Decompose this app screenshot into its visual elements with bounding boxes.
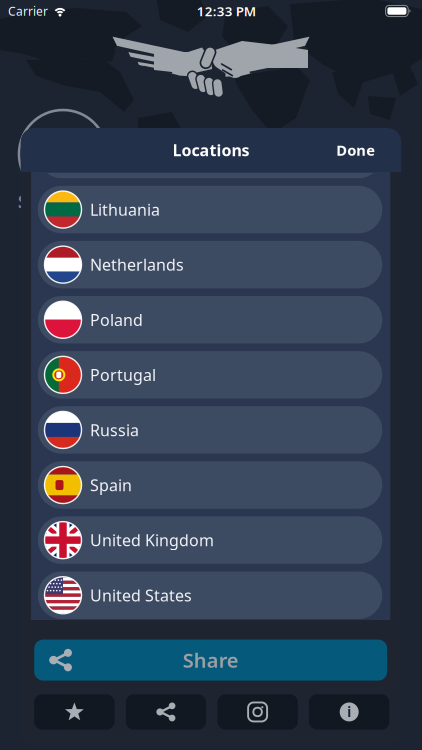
- button[interactable]: Share: [34, 640, 387, 681]
- button[interactable]: United States: [38, 571, 382, 619]
- staticText: Locations: [172, 139, 249, 161]
- button[interactable]: Russia: [38, 406, 382, 454]
- staticText: Poland: [90, 309, 143, 330]
- button[interactable]: Favourites: [34, 694, 115, 730]
- button[interactable]: Info: [309, 694, 389, 730]
- staticText: Russia: [90, 419, 139, 440]
- button[interactable]: Done: [328, 132, 383, 168]
- button[interactable]: United Kingdom: [38, 516, 382, 564]
- button[interactable]: Lithuania: [38, 186, 382, 233]
- staticText: Lithuania: [90, 199, 160, 220]
- staticText: i: [347, 703, 351, 721]
- button[interactable]: Netherlands: [38, 241, 382, 288]
- staticText: Netherlands: [90, 254, 184, 275]
- staticText: Share: [183, 647, 239, 673]
- staticText: Carrier: [8, 3, 48, 19]
- staticText: Spain: [90, 474, 132, 496]
- button[interactable]: Spain: [38, 461, 382, 509]
- staticText: United Kingdom: [90, 529, 214, 551]
- staticText: Done: [336, 140, 375, 160]
- staticText: S: [18, 190, 28, 213]
- button[interactable]: Poland: [38, 296, 382, 343]
- staticText: United States: [90, 585, 192, 606]
- button[interactable]: Portugal: [38, 351, 382, 399]
- button[interactable]: Share: [126, 694, 206, 730]
- button[interactable]: Instagram: [217, 694, 298, 730]
- staticText: 12:33 PM: [197, 2, 256, 20]
- staticText: Portugal: [90, 364, 156, 385]
